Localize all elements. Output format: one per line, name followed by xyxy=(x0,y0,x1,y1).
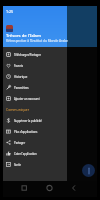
staticText: Supprimer la publicité xyxy=(14,119,42,123)
button[interactable]: Plus d'applications xyxy=(3,126,67,137)
staticText: Coter l'application xyxy=(14,152,37,156)
staticText: Télécharger/Partager xyxy=(14,53,41,57)
button[interactable]: Nouvelle note xyxy=(82,164,95,177)
staticText: Partager xyxy=(14,141,25,145)
button[interactable]: Ajouter un raccourci xyxy=(3,93,67,104)
staticText: Paramètres xyxy=(14,86,29,90)
staticText: Ajouter un raccourci xyxy=(14,97,40,101)
staticText: Trésors de l'Islam xyxy=(6,33,41,39)
button[interactable]: Partager xyxy=(3,137,67,148)
button[interactable]: Sortir xyxy=(3,159,67,170)
button[interactable]: Télécharger/Partager xyxy=(3,49,67,60)
staticText: Historique xyxy=(14,75,28,79)
staticText: Communiquer xyxy=(6,107,30,112)
staticText: 1:25 xyxy=(6,9,14,14)
button[interactable]: Coter l'application xyxy=(3,148,67,159)
staticText: Plus d'applications xyxy=(14,130,38,134)
button[interactable]: Historique xyxy=(3,71,67,82)
button[interactable]: Favoris xyxy=(3,60,67,71)
staticText: Sortir xyxy=(14,163,21,167)
button[interactable]: Supprimer la publicité xyxy=(3,115,67,126)
staticText: Rétrospective à l'Institut du Monde Arab… xyxy=(6,39,68,43)
button[interactable]: Paramètres xyxy=(3,82,67,93)
staticText: Favoris xyxy=(14,64,23,68)
